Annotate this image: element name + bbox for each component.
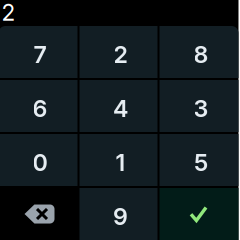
button[interactable]: 4 [79,80,157,132]
button[interactable]: 7 [0,26,77,78]
staticText: 8 [193,40,208,69]
staticText: 9 [113,202,128,231]
staticText: 5 [194,148,208,177]
button[interactable]: 0 [0,134,77,186]
button[interactable]: 2 [79,26,157,78]
button[interactable]: 6 [0,80,77,132]
staticText: 2 [1,0,15,26]
staticText: 3 [193,94,208,123]
staticText: 0 [32,148,47,177]
button[interactable]: 5 [159,134,238,186]
staticText: 2 [113,40,127,69]
button[interactable]: 9 [79,188,157,240]
staticText: 6 [32,94,47,123]
button[interactable]: Confirm [159,188,238,240]
button[interactable]: 8 [159,26,238,78]
button[interactable]: 3 [159,80,238,132]
staticText: 4 [113,94,128,123]
staticText: 7 [33,40,46,69]
staticText: 1 [115,148,125,177]
button[interactable]: Delete [0,188,77,240]
button[interactable]: 1 [79,134,157,186]
